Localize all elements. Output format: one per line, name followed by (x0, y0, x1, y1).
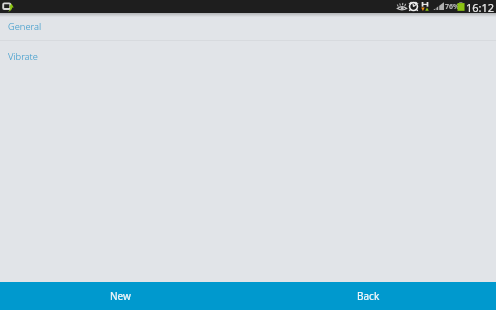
other: Mobile data (421, 2, 429, 11)
other: Smart stay (397, 2, 407, 11)
other: Battery 76 percent (457, 2, 465, 11)
other: Alarm set (408, 1, 419, 11)
staticText: Back (357, 289, 380, 303)
staticText: New (110, 289, 131, 303)
other: USB connected (3, 2, 14, 12)
other: Signal strength (433, 2, 444, 10)
button[interactable]: Vibrate (0, 41, 496, 71)
staticText: General (8, 20, 42, 33)
button[interactable]: General (0, 13, 496, 40)
button[interactable]: Back (248, 282, 496, 310)
staticText: Vibrate (8, 50, 38, 63)
staticText: 16:12 (466, 0, 495, 13)
staticText: 76% (445, 2, 460, 12)
button[interactable]: New (0, 282, 248, 310)
